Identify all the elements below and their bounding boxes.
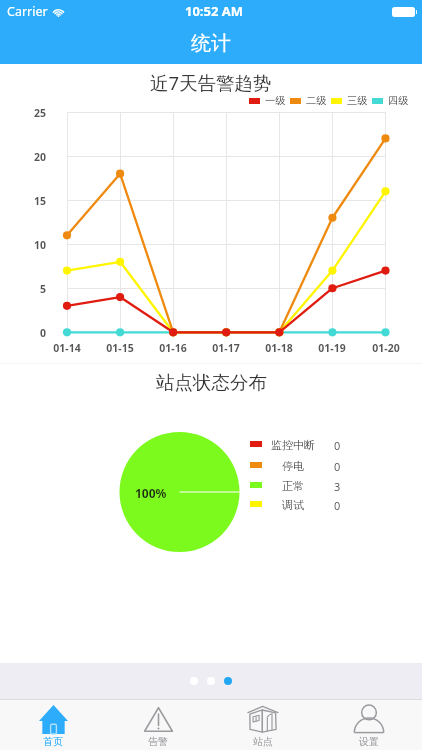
button[interactable]: 站点 (210, 700, 316, 750)
staticText: 01-20 (364, 341, 408, 355)
staticText: 近7天告警趋势 (150, 70, 272, 95)
staticText: 站点状态分布 (156, 371, 267, 394)
staticText: 四级 (388, 94, 409, 107)
staticText: 0 (334, 498, 341, 513)
button[interactable]: 首页 (0, 700, 105, 750)
staticText: 01-14 (45, 341, 89, 355)
staticText: 停电 (263, 459, 323, 473)
staticText: 01-15 (98, 341, 142, 355)
staticText: 设置 (359, 735, 379, 748)
staticText: 0 (22, 326, 46, 340)
staticText: 调试 (263, 498, 323, 512)
staticText: 二级 (306, 94, 327, 107)
staticText: 25 (22, 106, 46, 120)
staticText: 15 (22, 194, 46, 208)
staticText: 5 (22, 282, 46, 296)
staticText: 20 (22, 150, 46, 164)
staticText: 首页 (43, 735, 63, 748)
staticText: 01-19 (310, 341, 354, 355)
staticText: 监控中断 (263, 438, 323, 452)
staticText: 10 (22, 238, 46, 252)
staticText: 正常 (263, 479, 323, 493)
other: 首页 (39, 705, 68, 734)
staticText: 100% (135, 485, 167, 501)
button[interactable]: 设置 (316, 700, 422, 750)
other: 站点 (248, 706, 278, 733)
button[interactable]: 告警 (105, 700, 210, 750)
staticText: 一级 (265, 94, 286, 107)
staticText: 告警 (148, 735, 168, 748)
staticText: 三级 (347, 94, 368, 107)
staticText: 3 (334, 479, 341, 494)
other: 设置 (354, 705, 384, 733)
staticText: Carrier (7, 3, 48, 20)
staticText: 01-18 (257, 341, 301, 355)
staticText: 站点 (253, 735, 273, 748)
staticText: 01-16 (151, 341, 195, 355)
staticText: 0 (334, 438, 341, 453)
staticText: 0 (334, 459, 341, 474)
staticText: 统计 (191, 31, 231, 56)
other: 告警 (144, 707, 173, 732)
staticText: 01-17 (204, 341, 248, 355)
staticText: 10:52 AM (185, 2, 244, 20)
